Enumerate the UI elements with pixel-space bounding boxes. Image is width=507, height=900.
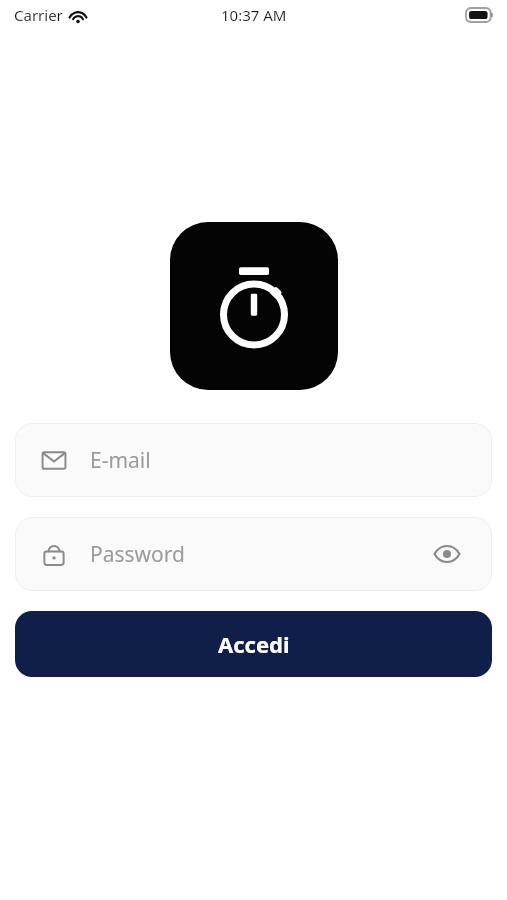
staticText: Carrier xyxy=(14,5,63,25)
staticText: Accedi xyxy=(218,629,290,659)
other: App logo xyxy=(170,222,338,390)
button[interactable]: E-mail xyxy=(15,423,492,497)
staticText: 10:37 AM xyxy=(221,5,287,25)
staticText: E-mail xyxy=(90,446,151,475)
staticText: Password xyxy=(90,540,185,569)
button[interactable]: Password xyxy=(15,517,492,591)
button[interactable]: Accedi xyxy=(15,611,492,677)
button[interactable]: Show password xyxy=(428,535,466,573)
